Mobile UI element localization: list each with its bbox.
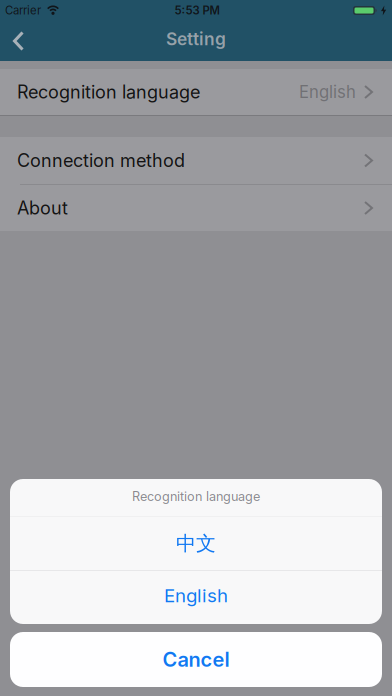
button[interactable]: 中文: [10, 517, 382, 570]
button[interactable]: Recognition language: [0, 69, 392, 115]
staticText: English: [164, 584, 228, 607]
button[interactable]: English: [10, 571, 382, 624]
staticText: About: [17, 197, 68, 219]
button[interactable]: Cancel: [10, 632, 382, 687]
button[interactable]: About: [0, 185, 392, 231]
staticText: 5:53 PM: [174, 4, 219, 17]
button[interactable]: Back: [0, 21, 40, 61]
staticText: Recognition language: [132, 489, 260, 504]
staticText: Carrier: [5, 4, 41, 17]
staticText: Connection method: [17, 150, 185, 171]
staticText: Setting: [166, 28, 226, 49]
staticText: Cancel: [162, 647, 229, 672]
staticText: English: [299, 82, 356, 102]
staticText: Recognition language: [17, 81, 200, 103]
staticText: 中文: [176, 531, 216, 556]
button[interactable]: Connection method: [0, 137, 392, 184]
